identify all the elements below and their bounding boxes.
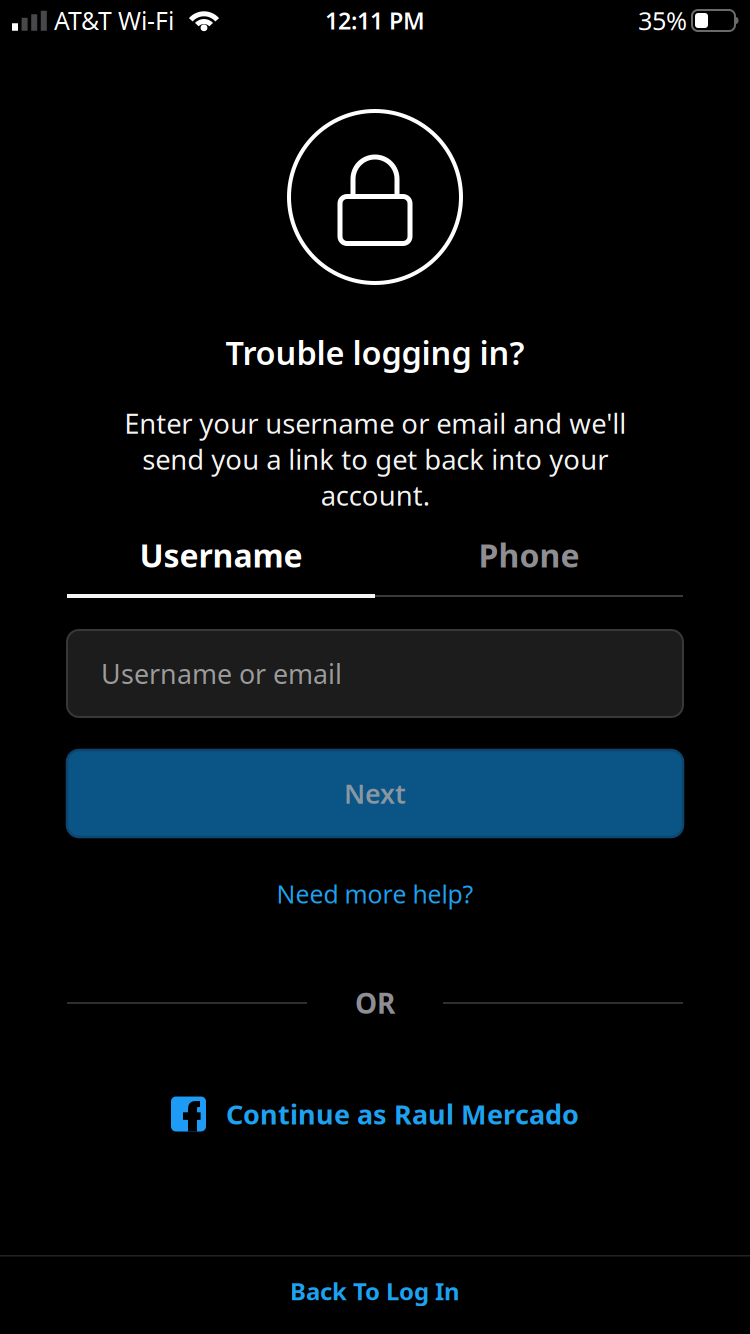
staticText: 35%	[638, 3, 687, 38]
staticText: Trouble logging in?	[225, 330, 524, 375]
button[interactable]: Phone	[375, 533, 683, 577]
staticText: Username	[139, 533, 302, 577]
button[interactable]: Username or email	[67, 630, 683, 717]
button[interactable]: Next	[67, 750, 683, 837]
button[interactable]: Back To Log In	[0, 1252, 750, 1329]
staticText: AT&T Wi-Fi	[54, 4, 174, 37]
staticText: Continue as Raul Mercado	[226, 1096, 579, 1132]
button[interactable]: Continue as Raul Mercado	[171, 1092, 579, 1136]
staticText: Back To Log In	[290, 1275, 460, 1307]
staticText: Phone	[478, 533, 579, 577]
staticText: Enter your username or email and we'll s…	[124, 404, 626, 514]
button[interactable]: Username	[67, 533, 375, 577]
staticText: Username or email	[101, 655, 342, 692]
staticText: 12:11 PM	[325, 5, 425, 36]
staticText: Need more help?	[276, 877, 473, 911]
staticText: Next	[344, 775, 406, 812]
button[interactable]: Need more help?	[276, 874, 473, 914]
staticText: OR	[355, 984, 395, 1022]
